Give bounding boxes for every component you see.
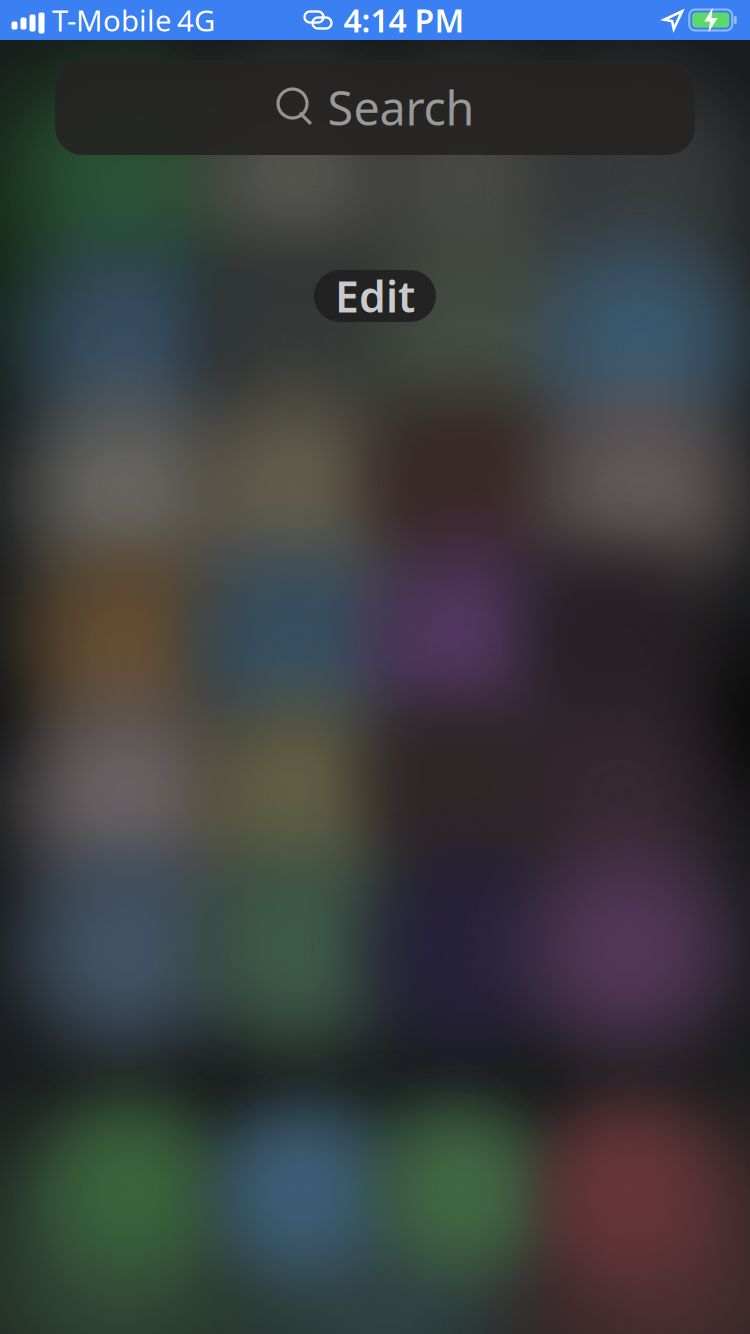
staticText: T-Mobile: [52, 0, 172, 39]
button[interactable]: Edit: [314, 270, 436, 322]
staticText: 4G: [177, 0, 215, 39]
staticText: 4:14 PM: [343, 0, 464, 41]
staticText: Search: [327, 76, 474, 138]
staticText: Edit: [335, 268, 415, 324]
button[interactable]: Search: [55, 60, 695, 155]
